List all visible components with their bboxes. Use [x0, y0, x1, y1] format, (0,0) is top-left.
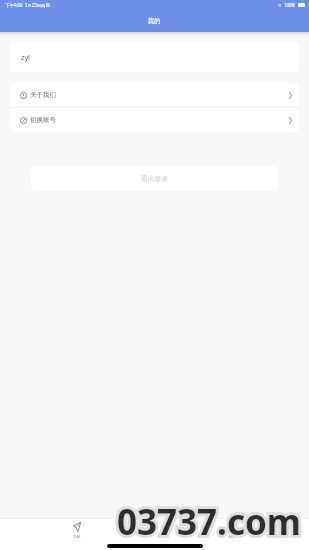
staticText: 我的 [148, 17, 161, 25]
staticText: zyl [21, 52, 30, 62]
staticText: 下午4:06 5月23日周四 [5, 2, 50, 8]
staticText: 100% [284, 2, 296, 8]
staticText: 退出登录 [141, 174, 169, 183]
staticText: 关于我们 [30, 91, 56, 99]
button[interactable]: 切换账号 [10, 108, 299, 132]
button[interactable]: 关于我们 [10, 83, 299, 107]
staticText: 我的 [228, 534, 236, 539]
button[interactable]: 退出登录 [31, 166, 278, 191]
button[interactable]: 导航 [0, 519, 154, 550]
staticText: 03737.com [117, 498, 301, 546]
button[interactable]: 我的 [154, 519, 309, 550]
button[interactable]: zyl [10, 42, 299, 72]
staticText: 导航 [73, 534, 81, 539]
staticText: 切换账号 [30, 116, 56, 124]
staticText: 03737.com [117, 498, 301, 546]
